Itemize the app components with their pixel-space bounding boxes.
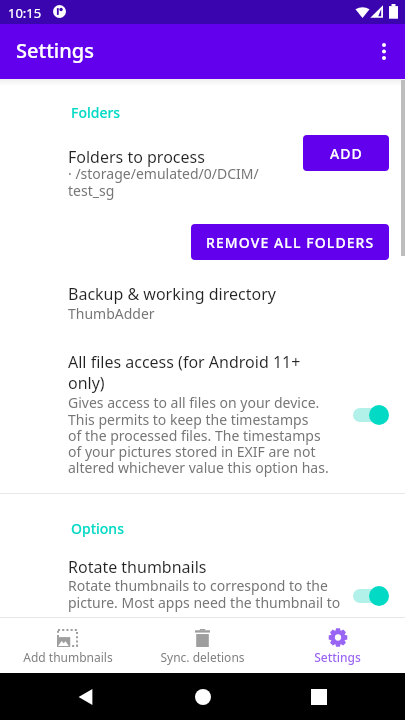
staticText: Options [71,519,124,538]
staticText: Gives access to all files on your device… [68,393,329,477]
staticText: Backup & working directory [68,283,276,305]
staticText: All files access (for Android 11+ only) [68,351,303,394]
button[interactable]: ADD [303,135,389,171]
button[interactable]: Settings [270,618,405,673]
button[interactable]: Toggle [351,584,389,608]
button[interactable]: Back [62,674,108,720]
button[interactable]: More options [362,29,405,73]
button[interactable]: Sync. deletions [135,618,270,673]
staticText: Sync. deletions [160,649,245,665]
staticText: Settings [314,649,361,665]
button[interactable]: Add thumbnails [0,618,135,673]
button[interactable]: Home [180,674,226,720]
button[interactable]: Toggle [351,403,389,427]
staticText: Add thumbnails [23,649,113,665]
staticText: Settings [16,37,94,64]
staticText: REMOVE ALL FOLDERS [206,233,375,252]
button[interactable]: REMOVE ALL FOLDERS [191,224,389,260]
staticText: Folders [71,103,121,122]
button[interactable]: Recents [296,674,342,720]
staticText: · /storage/emulated/0/DCIM/ test_sg [68,164,259,200]
staticText: Rotate thumbnails [68,556,207,578]
staticText: Rotate thumbnails to correspond to the p… [68,576,341,612]
staticText: ThumbAdder [68,304,155,323]
staticText: 10:15 [8,4,42,22]
staticText: Folders to process [68,146,205,168]
staticText: ADD [330,144,363,163]
